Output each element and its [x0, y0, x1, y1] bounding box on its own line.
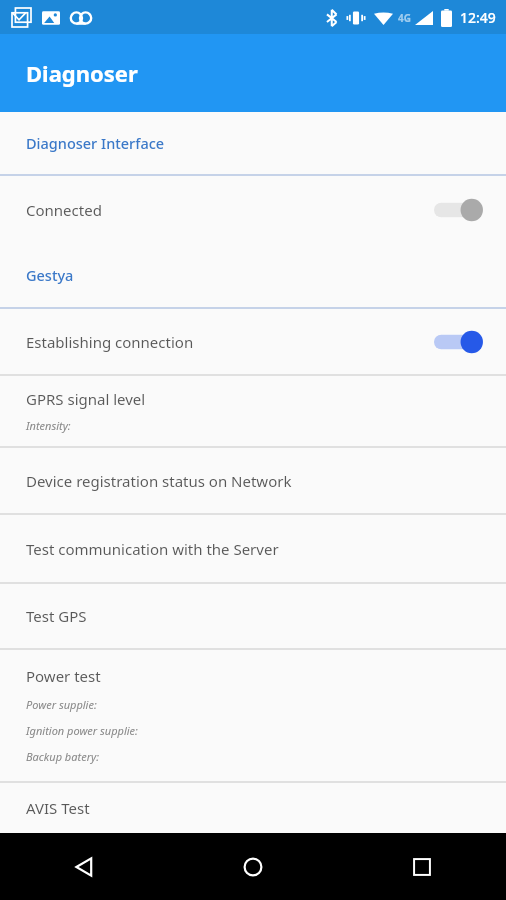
button[interactable]: Power test	[0, 650, 506, 781]
staticText: 12:49	[460, 8, 496, 27]
button[interactable]: Device registration status on Network	[0, 448, 506, 513]
staticText: Diagnoser Interface	[26, 133, 165, 153]
staticText: GPRS signal level	[26, 389, 146, 409]
staticText: AVIS Test	[26, 798, 90, 818]
staticText: Intensity:	[26, 418, 71, 433]
button[interactable]: Establishing connection	[0, 309, 506, 374]
staticText: Establishing connection	[26, 332, 434, 352]
button[interactable]: Gestya	[0, 243, 506, 307]
staticText: Test GPS	[26, 606, 87, 626]
staticText: Diagnoser	[26, 58, 138, 88]
button[interactable]: AVIS Test	[0, 783, 506, 833]
button[interactable]: Connected	[0, 176, 506, 243]
staticText: Power test	[26, 666, 101, 686]
button[interactable]: Home	[168, 833, 337, 900]
button[interactable]: Recent apps	[337, 833, 506, 900]
button[interactable]: Diagnoser Interface	[0, 112, 506, 174]
staticText: Backup batery:	[26, 749, 99, 764]
button[interactable]: Test GPS	[0, 584, 506, 648]
staticText: Power supplie:	[26, 697, 97, 712]
staticText: Ignition power supplie:	[26, 723, 138, 738]
button[interactable]: GPRS signal level	[0, 376, 506, 446]
staticText: Connected	[26, 200, 434, 220]
button[interactable]: Back	[0, 833, 168, 900]
staticText: 4G	[398, 11, 411, 25]
staticText: Device registration status on Network	[26, 471, 292, 491]
staticText: Test communication with the Server	[26, 539, 279, 559]
staticText: Gestya	[26, 265, 74, 285]
button[interactable]: Test communication with the Server	[0, 515, 506, 582]
